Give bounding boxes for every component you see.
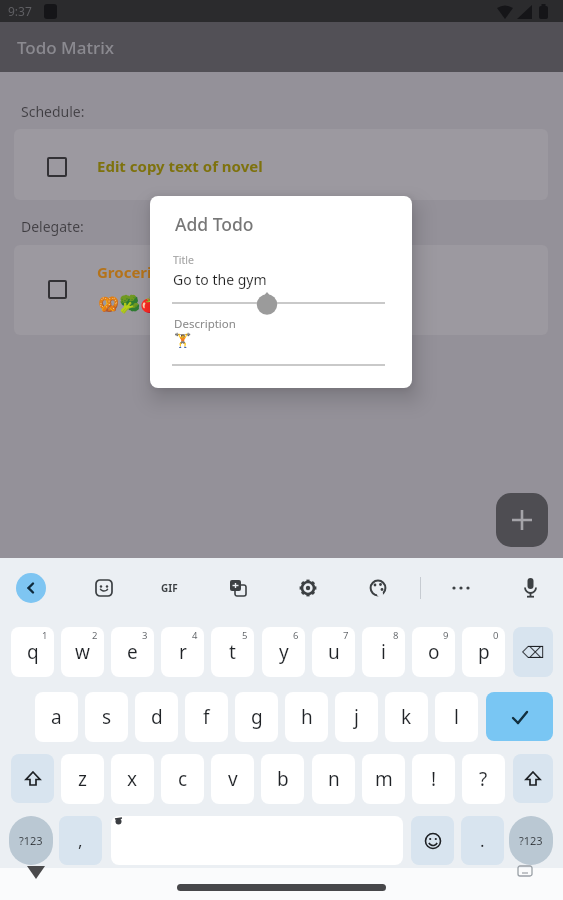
staticText: m bbox=[375, 766, 393, 792]
button[interactable]: ? bbox=[462, 754, 505, 804]
button[interactable]: z bbox=[61, 754, 104, 804]
button[interactable]: e bbox=[111, 627, 154, 677]
button[interactable]: p bbox=[462, 627, 505, 677]
button[interactable]: h bbox=[285, 692, 328, 742]
button[interactable] bbox=[486, 692, 553, 741]
staticText: 7 bbox=[343, 629, 349, 642]
staticText: g bbox=[251, 704, 263, 730]
button[interactable]: v bbox=[211, 754, 254, 804]
button[interactable]: o bbox=[412, 627, 455, 677]
button[interactable] bbox=[299, 579, 317, 597]
staticText: Add Todo bbox=[175, 212, 254, 236]
button[interactable] bbox=[16, 573, 46, 603]
staticText: q bbox=[27, 639, 39, 665]
staticText: Go to the gym bbox=[173, 270, 267, 289]
staticText: ⌫ bbox=[522, 643, 545, 662]
staticText: Delegate: bbox=[21, 217, 84, 236]
button[interactable]: j bbox=[335, 692, 378, 742]
staticText: GIF bbox=[161, 581, 178, 595]
button[interactable] bbox=[450, 579, 472, 597]
staticText: f bbox=[203, 704, 210, 730]
button[interactable] bbox=[11, 754, 54, 803]
button[interactable]: ?123 bbox=[509, 816, 553, 865]
button[interactable]: i bbox=[362, 627, 405, 677]
staticText: v bbox=[228, 766, 238, 792]
button[interactable]: t bbox=[211, 627, 254, 677]
staticText: Groceries for the week bbox=[97, 262, 267, 282]
button[interactable]: n bbox=[312, 754, 355, 804]
staticText: k bbox=[401, 704, 412, 730]
staticText: 6 bbox=[293, 629, 299, 642]
staticText: ?123 bbox=[519, 833, 543, 848]
staticText: j bbox=[354, 704, 359, 730]
staticText: h bbox=[301, 704, 313, 730]
button[interactable]: u bbox=[312, 627, 355, 677]
button[interactable] bbox=[522, 577, 539, 599]
staticText: , bbox=[78, 829, 83, 852]
staticText: o bbox=[428, 639, 440, 665]
button[interactable]: x bbox=[111, 754, 154, 804]
staticText: p bbox=[478, 639, 490, 665]
staticText: 1 bbox=[42, 629, 48, 642]
staticText: l bbox=[454, 704, 459, 730]
button[interactable] bbox=[14, 245, 548, 335]
button[interactable]: ?123 bbox=[9, 816, 53, 865]
staticText: Todo Matrix bbox=[17, 36, 114, 59]
button[interactable] bbox=[111, 816, 403, 865]
staticText: ! bbox=[431, 766, 437, 792]
staticText: r bbox=[179, 639, 187, 665]
staticText: y bbox=[279, 639, 289, 665]
staticText: b bbox=[277, 766, 289, 792]
staticText: ? bbox=[479, 766, 488, 792]
button[interactable]: b bbox=[261, 754, 304, 804]
button[interactable]: g bbox=[235, 692, 278, 742]
staticText: u bbox=[328, 639, 340, 665]
button[interactable]: a bbox=[35, 692, 78, 742]
button[interactable]: ! bbox=[412, 754, 455, 804]
staticText: a bbox=[51, 704, 62, 730]
button[interactable]: r bbox=[161, 627, 204, 677]
staticText: Schedule: bbox=[21, 102, 85, 121]
staticText: 🏋 bbox=[174, 332, 192, 348]
button[interactable] bbox=[47, 157, 67, 177]
button[interactable]: f bbox=[185, 692, 228, 742]
staticText: 🥨🥦🍅 🧀 bbox=[98, 292, 188, 315]
staticText: c bbox=[178, 766, 188, 792]
staticText: t bbox=[229, 639, 236, 665]
staticText: w bbox=[75, 639, 90, 665]
staticText: x bbox=[127, 766, 138, 792]
button[interactable] bbox=[411, 816, 454, 865]
button[interactable]: GIF bbox=[156, 579, 182, 597]
button[interactable]: s bbox=[85, 692, 128, 742]
button[interactable] bbox=[14, 129, 548, 200]
staticText: 0 bbox=[493, 629, 499, 642]
staticText: 4 bbox=[192, 629, 198, 642]
button[interactable] bbox=[369, 579, 387, 597]
button[interactable]: q bbox=[11, 627, 54, 677]
staticText: Description bbox=[174, 316, 236, 332]
staticText: n bbox=[328, 766, 340, 792]
staticText: Title bbox=[173, 253, 194, 267]
button[interactable]: ⌫ bbox=[513, 627, 553, 677]
staticText: 9:37 bbox=[8, 3, 32, 19]
staticText: 3 bbox=[142, 629, 148, 642]
staticText: 5 bbox=[242, 629, 248, 642]
button[interactable] bbox=[229, 579, 247, 597]
button[interactable]: . bbox=[461, 816, 504, 865]
button[interactable] bbox=[48, 280, 67, 299]
button[interactable]: y bbox=[262, 627, 305, 677]
button[interactable] bbox=[513, 754, 553, 803]
button[interactable] bbox=[496, 493, 548, 547]
staticText: s bbox=[102, 704, 112, 730]
staticText: 2 bbox=[92, 629, 98, 642]
staticText: ?123 bbox=[19, 833, 43, 848]
button[interactable]: d bbox=[135, 692, 178, 742]
button[interactable] bbox=[95, 579, 113, 597]
button[interactable]: m bbox=[362, 754, 405, 804]
button[interactable]: k bbox=[385, 692, 428, 742]
button[interactable]: w bbox=[61, 627, 104, 677]
button[interactable]: l bbox=[435, 692, 478, 742]
staticText: d bbox=[151, 704, 163, 730]
button[interactable]: , bbox=[59, 816, 102, 865]
button[interactable]: c bbox=[161, 754, 204, 804]
